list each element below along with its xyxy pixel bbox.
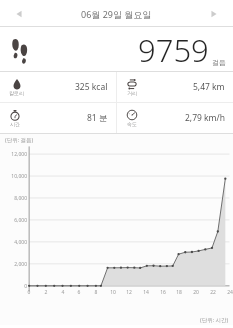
staticText: 6,000 bbox=[0, 217, 27, 224]
button[interactable]: Next day bbox=[202, 2, 226, 26]
staticText: 2,000 bbox=[0, 261, 27, 268]
staticText: 6 bbox=[71, 289, 87, 296]
staticText: 18 bbox=[171, 289, 187, 296]
staticText: 0 bbox=[21, 289, 37, 296]
staticText: 8 bbox=[88, 289, 104, 296]
staticText: 속도 bbox=[127, 121, 137, 127]
staticText: 4,000 bbox=[0, 239, 27, 246]
staticText: 12,000 bbox=[0, 151, 27, 158]
button[interactable]: 칼로리 bbox=[0, 72, 116, 102]
staticText: 81 분 bbox=[87, 112, 108, 124]
staticText: (단위: 시간) bbox=[200, 316, 229, 324]
staticText: 5,47 km bbox=[193, 81, 225, 93]
staticText: 10 bbox=[105, 289, 121, 296]
staticText: 0 bbox=[0, 283, 27, 290]
staticText: 칼로리 bbox=[9, 90, 24, 96]
staticText: 24 bbox=[222, 289, 233, 296]
button[interactable]: 시간 bbox=[0, 103, 116, 133]
staticText: 06월 29일 월요일 bbox=[81, 8, 152, 20]
button[interactable]: Previous day bbox=[7, 2, 31, 26]
staticText: 325 kcal bbox=[75, 81, 108, 93]
staticText: 9759 bbox=[138, 29, 209, 71]
staticText: 거리 bbox=[127, 90, 137, 96]
staticText: 16 bbox=[155, 289, 171, 296]
staticText: 시간 bbox=[10, 121, 20, 127]
staticText: 2 bbox=[38, 289, 54, 296]
staticText: 12 bbox=[121, 289, 137, 296]
staticText: 20 bbox=[188, 289, 204, 296]
button[interactable]: 속도 bbox=[117, 103, 233, 133]
staticText: 8,000 bbox=[0, 195, 27, 202]
staticText: 4 bbox=[55, 289, 71, 296]
staticText: 22 bbox=[205, 289, 221, 296]
staticText: 2,79 km/h bbox=[185, 112, 225, 124]
button[interactable]: 거리 bbox=[117, 72, 233, 102]
staticText: (단위: 걸음) bbox=[5, 136, 34, 144]
staticText: 14 bbox=[138, 289, 154, 296]
staticText: 걸음 bbox=[212, 58, 226, 67]
staticText: 10,000 bbox=[0, 173, 27, 180]
